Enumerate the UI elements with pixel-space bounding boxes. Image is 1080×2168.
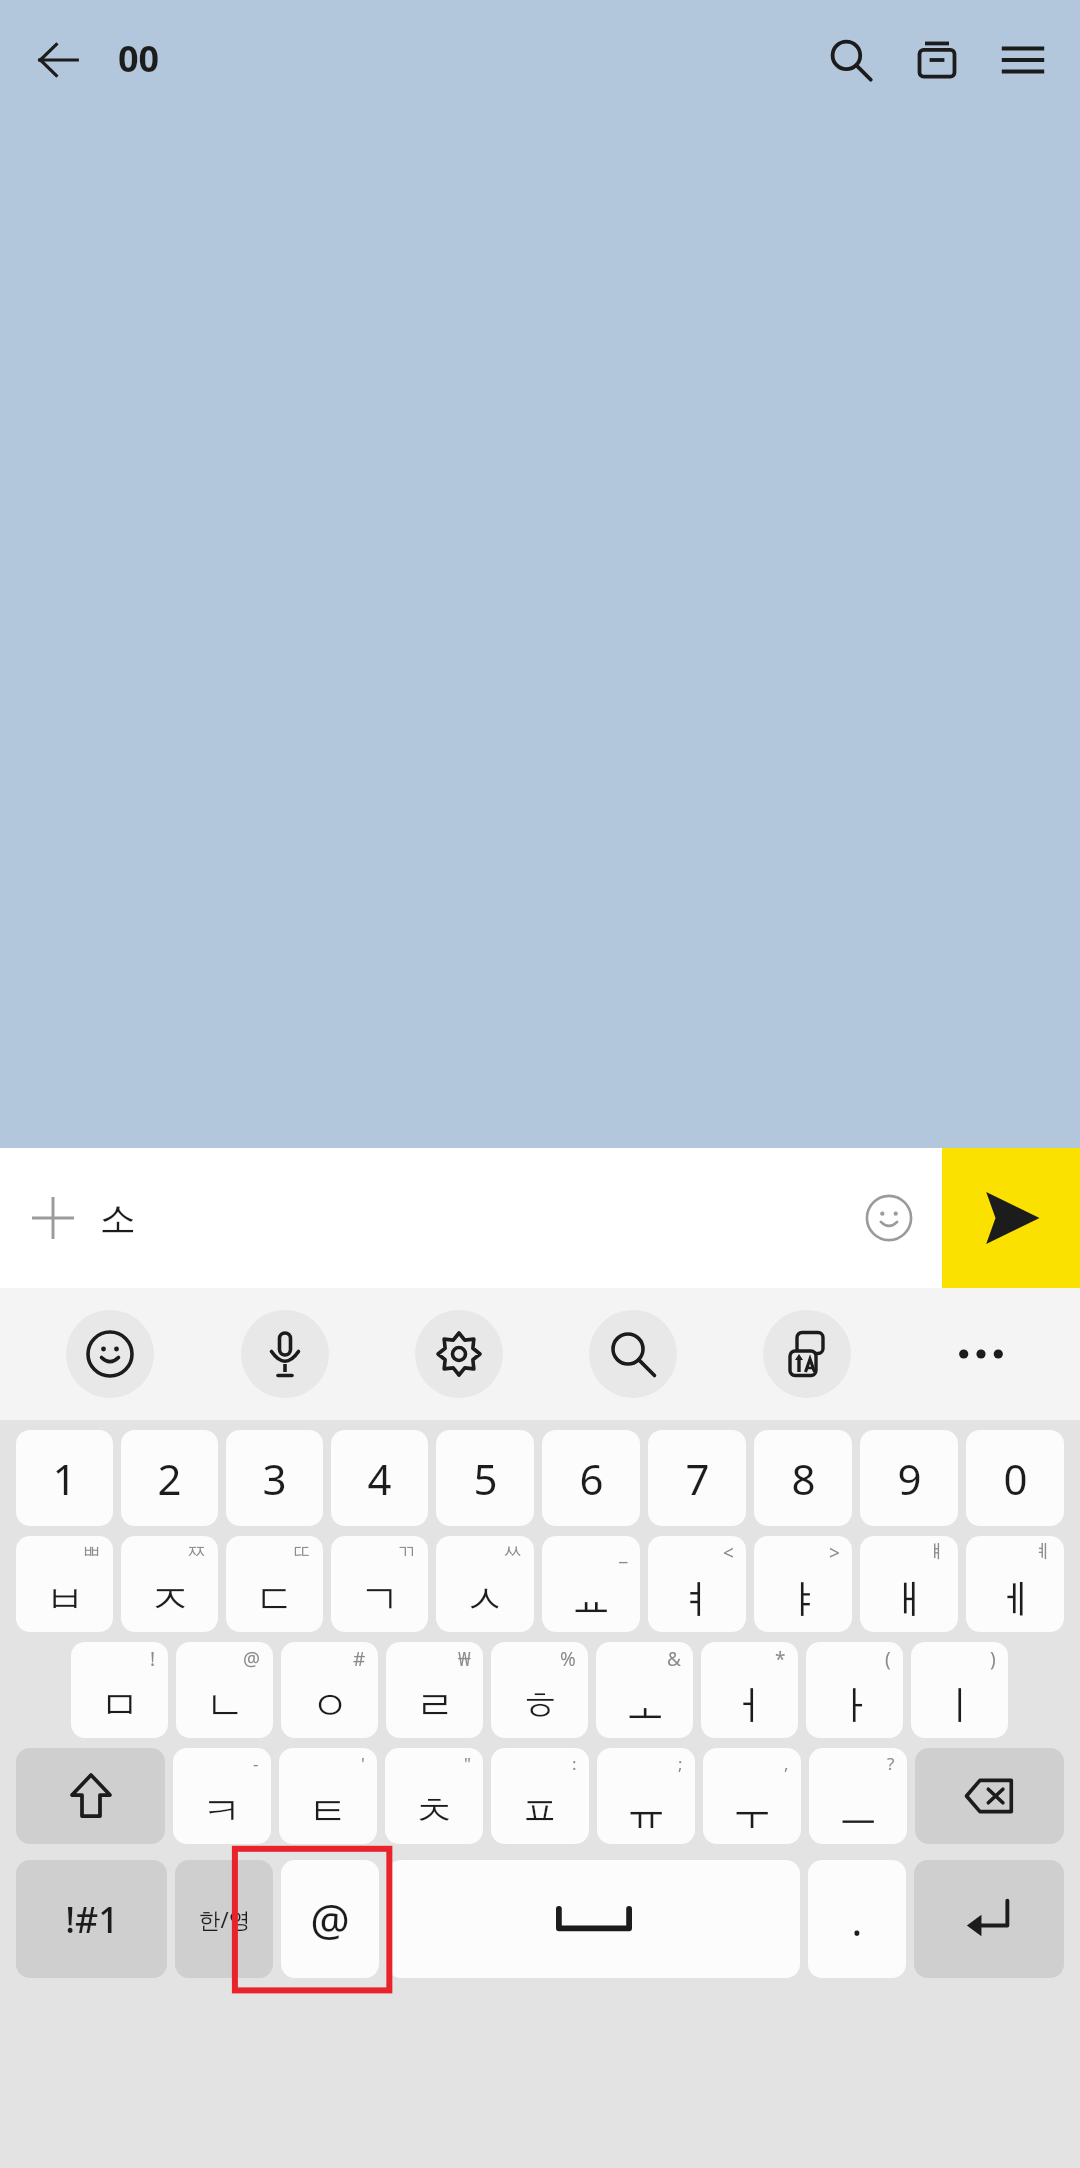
button[interactable]: More options (894, 1288, 1068, 1420)
button[interactable]: 9 (860, 1430, 958, 1526)
button[interactable]: 5 (436, 1430, 534, 1526)
staticText: _ (619, 1540, 628, 1566)
button[interactable]: 2 (121, 1430, 218, 1526)
staticText: ㅎ (520, 1680, 560, 1730)
button[interactable]: ㅏ (806, 1642, 903, 1738)
button[interactable]: 6 (542, 1430, 640, 1526)
button[interactable]: ㅂ (16, 1536, 113, 1632)
button[interactable]: ㅡ (809, 1748, 907, 1844)
staticText: ㅔ (995, 1574, 1035, 1624)
button[interactable]: Menu (980, 17, 1066, 103)
staticText: ㄹ (415, 1680, 455, 1730)
button[interactable]: ㅈ (121, 1536, 218, 1632)
button[interactable]: ㅗ (596, 1642, 693, 1738)
staticText: ㅣ (940, 1680, 980, 1730)
button[interactable]: Language (175, 1860, 273, 1978)
staticText: ㅉ (187, 1540, 206, 1564)
button[interactable]: ㅓ (701, 1642, 798, 1738)
staticText: ㅏ (835, 1680, 875, 1730)
button[interactable]: ㅌ (279, 1748, 377, 1844)
button[interactable]: Search (808, 17, 894, 103)
staticText: ㅠ (626, 1786, 666, 1836)
staticText: ) (990, 1646, 996, 1672)
button[interactable]: ㅠ (597, 1748, 695, 1844)
button[interactable]: ㄴ (176, 1642, 273, 1738)
button[interactable]: ㅎ (491, 1642, 588, 1738)
staticText: % (560, 1646, 576, 1672)
button[interactable]: ㅍ (491, 1748, 589, 1844)
staticText: - (253, 1752, 259, 1775)
button[interactable]: ㅛ (542, 1536, 640, 1632)
staticText: ㅆ (503, 1540, 522, 1564)
staticText: 9 (897, 1450, 922, 1507)
staticText: ' (361, 1752, 365, 1775)
button[interactable]: ㅊ (385, 1748, 483, 1844)
button[interactable]: ㅕ (648, 1536, 746, 1632)
button[interactable]: Translate (720, 1288, 894, 1420)
button[interactable]: ㅣ (911, 1642, 1008, 1738)
staticText: 1 (52, 1450, 77, 1507)
staticText: ㅊ (414, 1786, 454, 1836)
button[interactable]: ㅐ (860, 1536, 958, 1632)
staticText: 소 (100, 1196, 136, 1241)
staticText: ㅅ (465, 1574, 505, 1624)
button[interactable]: ㄱ (331, 1536, 428, 1632)
button[interactable]: ㅁ (71, 1642, 168, 1738)
staticText: !#1 (65, 1895, 119, 1944)
staticText: # (353, 1646, 366, 1672)
button[interactable]: Shift (16, 1748, 165, 1844)
button[interactable]: Backspace (915, 1748, 1064, 1844)
staticText: ㅃ (82, 1540, 101, 1564)
staticText: ㅓ (730, 1680, 770, 1730)
button[interactable]: 8 (754, 1430, 852, 1526)
staticText: ( (885, 1646, 891, 1672)
staticText: ㅒ (927, 1540, 946, 1564)
staticText: ㅑ (783, 1574, 823, 1624)
button[interactable]: Search (546, 1288, 720, 1420)
button[interactable]: Attach (14, 1179, 92, 1257)
button[interactable]: 4 (331, 1430, 428, 1526)
staticText: ㅁ (100, 1680, 140, 1730)
button[interactable]: ㅜ (703, 1748, 801, 1844)
button[interactable]: 0 (966, 1430, 1064, 1526)
button[interactable]: Keyboard settings (372, 1288, 546, 1420)
staticText: ㅜ (732, 1786, 772, 1836)
button[interactable]: ㄷ (226, 1536, 323, 1632)
button[interactable]: ㅇ (281, 1642, 378, 1738)
staticText: 4 (367, 1450, 392, 1507)
staticText: 한/영 (198, 1904, 251, 1934)
staticText: 00 (118, 34, 160, 83)
button[interactable]: ㅔ (966, 1536, 1064, 1632)
button[interactable]: Space (387, 1860, 800, 1978)
button[interactable]: 7 (648, 1430, 746, 1526)
button[interactable]: ㅅ (436, 1536, 534, 1632)
button[interactable]: Send (942, 1148, 1080, 1288)
button[interactable]: Emoji (22, 1288, 197, 1420)
staticText: * (775, 1646, 786, 1672)
staticText: : (572, 1752, 577, 1775)
button[interactable]: 3 (226, 1430, 323, 1526)
button[interactable]: Period (808, 1860, 906, 1978)
button[interactable]: Voice input (197, 1288, 372, 1420)
button[interactable]: ㅑ (754, 1536, 852, 1632)
staticText: 8 (791, 1450, 816, 1507)
staticText: ㄴ (205, 1680, 245, 1730)
staticText: ㅛ (571, 1574, 611, 1624)
button[interactable]: Enter (914, 1860, 1064, 1978)
button[interactable]: 1 (16, 1430, 113, 1526)
button[interactable]: Symbols (16, 1860, 167, 1978)
staticText: @ (310, 1889, 350, 1949)
button[interactable]: ㄹ (386, 1642, 483, 1738)
staticText: 7 (685, 1450, 710, 1507)
staticText: ; (678, 1752, 683, 1775)
staticText: ㅇ (310, 1680, 350, 1730)
button[interactable]: At sign (281, 1860, 379, 1978)
staticText: ㅖ (1033, 1540, 1052, 1564)
staticText: . (851, 1891, 863, 1948)
staticText: 6 (579, 1450, 604, 1507)
button[interactable]: ㅋ (173, 1748, 271, 1844)
button[interactable]: Back (20, 22, 96, 98)
button[interactable]: Archive (894, 17, 980, 103)
button[interactable]: Emoticon (844, 1173, 934, 1263)
staticText: ㅈ (150, 1574, 190, 1624)
